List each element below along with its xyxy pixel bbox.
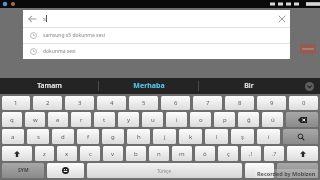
staticText: Tamam: [37, 81, 62, 91]
button[interactable]: ğ: [238, 112, 259, 127]
staticText: 3: [78, 99, 82, 107]
button[interactable]: ç: [218, 146, 238, 161]
button[interactable]: b: [126, 146, 146, 161]
button[interactable]: e: [48, 112, 68, 127]
button[interactable]: a: [2, 129, 24, 144]
staticText: v: [111, 150, 115, 158]
button[interactable]: .?: [264, 146, 284, 161]
button[interactable]: 1: [2, 96, 30, 110]
staticText: Bir: [244, 81, 254, 91]
button[interactable]: o: [190, 112, 211, 127]
button[interactable]: y: [118, 112, 139, 127]
staticText: p: [223, 116, 227, 124]
button[interactable]: 6: [161, 96, 190, 110]
staticText: s: [37, 133, 40, 141]
staticText: dokunma sesi: [43, 48, 76, 55]
staticText: 1: [14, 99, 18, 107]
button[interactable]: n: [149, 146, 169, 161]
button[interactable]: Merhaba: [99, 78, 198, 94]
button[interactable]: k: [179, 129, 202, 144]
staticText: Türkçe: [157, 168, 172, 174]
staticText: t: [103, 116, 106, 124]
button[interactable]: 4: [97, 96, 126, 110]
button[interactable]: f: [77, 129, 99, 144]
button[interactable]: 2: [33, 96, 62, 110]
staticText: ç: [227, 150, 230, 158]
button[interactable]: ü: [262, 112, 283, 127]
staticText: z: [43, 150, 46, 158]
button[interactable]: Emoji: [47, 163, 84, 178]
button[interactable]: i: [166, 112, 187, 127]
staticText: e: [56, 116, 60, 124]
staticText: s: [43, 15, 46, 23]
staticText: h: [137, 133, 141, 141]
staticText: Recorded by Mobizen: [257, 170, 316, 177]
button[interactable]: dokunma sesi: [23, 44, 290, 59]
staticText: l: [216, 133, 218, 141]
button[interactable]: i: [257, 129, 280, 144]
button[interactable]: ş: [231, 129, 254, 144]
button[interactable]: p: [214, 112, 235, 127]
button[interactable]: z: [35, 146, 54, 161]
button[interactable]: SYM: [2, 163, 44, 178]
staticText: 8: [238, 99, 242, 107]
staticText: 7: [206, 99, 210, 107]
button[interactable]: 7: [193, 96, 222, 110]
button[interactable]: 3: [65, 96, 94, 110]
staticText: r: [80, 116, 83, 124]
button[interactable]: 8: [225, 96, 254, 110]
staticText: u: [151, 116, 155, 124]
button[interactable]: u: [142, 112, 163, 127]
button[interactable]: Backspace: [286, 112, 318, 127]
staticText: i: [268, 133, 270, 141]
button[interactable]: j: [153, 129, 176, 144]
button[interactable]: ö: [195, 146, 215, 161]
button[interactable]: samsung s5 dokunma sesi: [23, 28, 290, 43]
button[interactable]: Bir: [199, 78, 298, 94]
staticText: 0: [302, 99, 306, 107]
staticText: i: [176, 116, 178, 124]
button[interactable]: r: [71, 112, 91, 127]
button[interactable]: Search: [283, 129, 318, 144]
button[interactable]: x: [57, 146, 77, 161]
button[interactable]: t: [94, 112, 115, 127]
button[interactable]: ,!: [241, 146, 261, 161]
button[interactable]: s: [27, 129, 49, 144]
button[interactable]: m: [172, 146, 192, 161]
button[interactable]: Expand suggestions: [298, 78, 320, 94]
button[interactable]: q: [2, 112, 22, 127]
button[interactable]: Clear: [273, 10, 290, 27]
button[interactable]: Back: [23, 10, 40, 27]
button[interactable]: .: [245, 163, 274, 178]
button[interactable]: 0: [289, 96, 318, 110]
staticText: 6: [174, 99, 178, 107]
staticText: 5: [142, 99, 146, 107]
button[interactable]: l: [205, 129, 228, 144]
button[interactable]: Back: [23, 10, 290, 27]
button[interactable]: 5: [129, 96, 158, 110]
button[interactable]: v: [103, 146, 123, 161]
button[interactable]: Shift: [2, 146, 32, 161]
staticText: 4: [110, 99, 114, 107]
staticText: o: [199, 116, 203, 124]
staticText: 9: [270, 99, 274, 107]
staticText: ö: [203, 150, 207, 158]
button[interactable]: Shift: [287, 146, 318, 161]
button[interactable]: w: [25, 112, 45, 127]
button[interactable]: 9: [257, 96, 286, 110]
button[interactable]: Tamam: [0, 78, 98, 94]
button[interactable]: c: [80, 146, 100, 161]
staticText: m: [179, 150, 185, 158]
staticText: w: [33, 116, 38, 124]
staticText: b: [134, 150, 138, 158]
button[interactable]: h: [127, 129, 150, 144]
staticText: .: [259, 167, 261, 175]
staticText: .?: [272, 150, 277, 158]
button[interactable]: Enter: [277, 163, 318, 178]
button[interactable]: Space: [87, 163, 242, 178]
button[interactable]: d: [52, 129, 74, 144]
staticText: n: [157, 150, 161, 158]
staticText: ü: [271, 116, 275, 124]
staticText: f: [87, 133, 90, 141]
button[interactable]: g: [102, 129, 124, 144]
